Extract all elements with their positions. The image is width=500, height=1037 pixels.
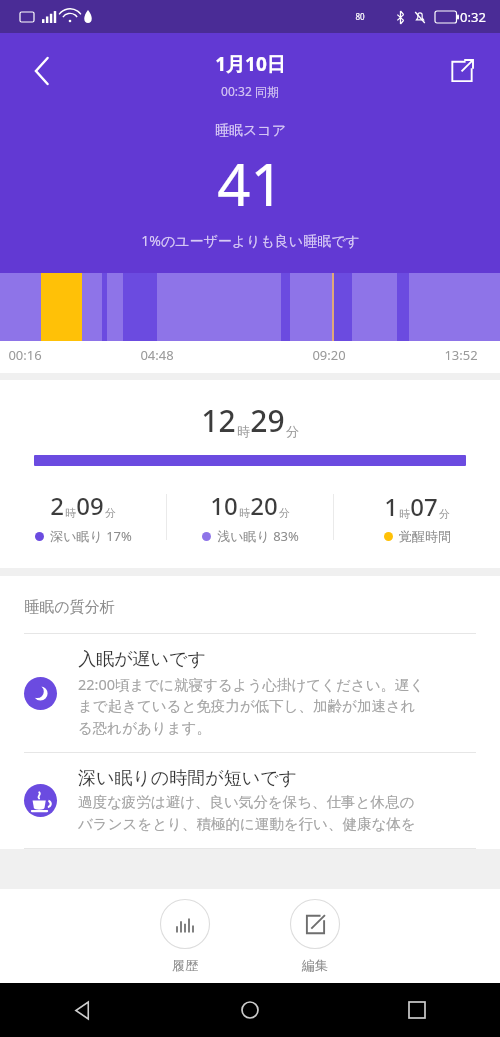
button[interactable]: Share <box>436 45 488 97</box>
staticText: 分 <box>439 507 450 521</box>
staticText: 41 <box>217 144 284 223</box>
button[interactable]: 1 <box>334 490 500 544</box>
staticText: 2 <box>50 489 64 522</box>
button[interactable]: 2 <box>0 489 166 545</box>
staticText: 時 <box>399 507 410 521</box>
staticText: 09 <box>76 489 104 522</box>
other: Sleep onset <box>24 677 57 710</box>
staticText: 12 <box>201 400 236 441</box>
button[interactable]: Deep sleep tip <box>0 753 500 848</box>
button[interactable]: Home <box>227 987 273 1033</box>
staticText: 1月10日 <box>215 51 286 77</box>
staticText: 時 <box>239 506 250 520</box>
staticText: 10 <box>210 489 238 522</box>
button[interactable]: Recent apps <box>394 987 440 1033</box>
staticText: 04:48 <box>140 346 174 364</box>
staticText: 睡眠の質分析 <box>24 598 115 617</box>
button[interactable]: Back <box>16 45 68 97</box>
staticText: 80 <box>355 11 365 22</box>
staticText: 分 <box>279 506 290 520</box>
other: Edit <box>305 914 326 935</box>
other: History <box>175 914 195 934</box>
staticText: 編集 <box>302 957 328 973</box>
other: Deep sleep tip <box>24 784 57 817</box>
staticText: 時 <box>237 423 250 439</box>
staticText: 00:16 <box>8 346 42 364</box>
staticText: 深い眠りの時間が短いです <box>78 767 297 790</box>
staticText: 覚醒時間 <box>399 528 451 544</box>
staticText: 1%のユーザーよりも良い睡眠です <box>141 231 360 250</box>
staticText: 00:32 同期 <box>221 83 279 99</box>
button[interactable]: Back <box>60 987 106 1033</box>
staticText: 分 <box>286 423 299 439</box>
button[interactable]: Sleep onset <box>0 634 500 752</box>
staticText: 13:52 <box>444 346 478 364</box>
button[interactable]: Edit <box>282 895 348 977</box>
staticText: 22:00頃までに就寝するよう心掛けてください。遅く まで起きていると免疫力が低… <box>78 674 425 738</box>
staticText: 時 <box>65 506 76 520</box>
button[interactable]: History <box>152 895 218 977</box>
staticText: 0:32 <box>460 8 486 26</box>
staticText: 睡眠スコア <box>215 122 286 140</box>
staticText: 入眠が遅いです <box>78 648 206 671</box>
staticText: 浅い眠り 83% <box>217 527 299 545</box>
staticText: 20 <box>250 489 278 522</box>
button[interactable]: 10 <box>167 489 333 545</box>
staticText: 1 <box>384 490 398 523</box>
staticText: 履歴 <box>172 957 198 973</box>
staticText: 29 <box>250 400 285 441</box>
staticText: 過度な疲労は避け、良い気分を保ち、仕事と休息の バランスをとり、積極的に運動を行… <box>78 793 416 834</box>
staticText: 09:20 <box>312 346 346 364</box>
staticText: 深い眠り 17% <box>50 527 132 545</box>
staticText: 07 <box>410 490 438 523</box>
staticText: 分 <box>105 506 116 520</box>
